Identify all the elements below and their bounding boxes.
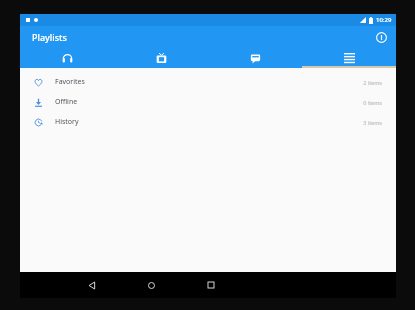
button[interactable]: About	[372, 28, 390, 46]
staticText: 10:29	[376, 16, 392, 24]
staticText: 3 items	[363, 119, 382, 126]
staticText: History	[55, 117, 79, 127]
staticText: 2 items	[363, 79, 382, 86]
button[interactable]: Video	[114, 48, 208, 68]
staticText: Playlists	[32, 31, 67, 43]
staticText: Offline	[55, 97, 78, 107]
button[interactable]: Favorites	[20, 72, 396, 92]
button[interactable]: Chat	[208, 48, 302, 68]
button[interactable]: Music	[20, 48, 114, 68]
staticText: Favorites	[55, 77, 85, 87]
button[interactable]: Playlists	[302, 48, 396, 68]
button[interactable]: Back	[80, 274, 102, 296]
button[interactable]: Home	[140, 274, 162, 296]
button[interactable]: Recent apps	[200, 274, 222, 296]
button[interactable]: History	[20, 112, 396, 132]
staticText: 0 items	[363, 99, 382, 106]
button[interactable]: Offline	[20, 92, 396, 112]
